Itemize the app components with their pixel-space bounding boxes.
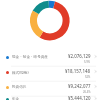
other: Details — [94, 97, 97, 100]
staticText: 52% — [85, 75, 91, 79]
staticText: ¥9,242,077 — [68, 83, 91, 89]
staticText: ¥5,444,120 — [68, 95, 91, 100]
staticText: ¥18,157,148 — [65, 68, 91, 74]
button[interactable]: 投資信託 — [0, 83, 100, 98]
staticText: ¥2,076,129 — [68, 53, 91, 59]
button[interactable]: 株式(現物) — [0, 68, 100, 83]
staticText: 5.9% — [84, 60, 91, 64]
button[interactable]: 年金 — [0, 95, 100, 100]
other: Details — [94, 70, 97, 73]
staticText: 投資信託 — [12, 85, 27, 90]
other: Details — [94, 55, 97, 58]
staticText: 株式(現物) — [12, 70, 29, 75]
other: Details — [94, 85, 97, 88]
button[interactable]: 現金・預金・暗号資産 — [0, 53, 100, 68]
staticText: 年金 — [12, 97, 20, 100]
staticText: 現金・預金・暗号資産 — [12, 55, 48, 60]
staticText: 26.4% — [83, 90, 91, 94]
